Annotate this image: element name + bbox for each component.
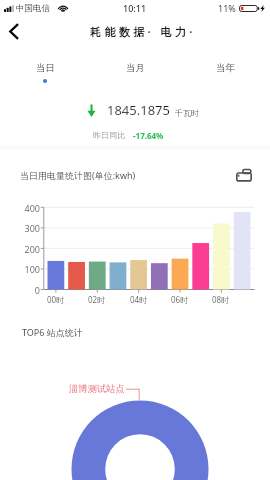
staticText: 08时 [212,294,230,305]
staticText: 当日用电量统计图(单位:kwh) [20,169,136,181]
staticText: 昨日同比 [93,130,125,140]
staticText: 200 [24,243,40,254]
staticText: 0 [34,284,40,295]
button[interactable]: 当月 [90,57,180,87]
staticText: 中国电信 [16,3,50,14]
staticText: 10:11 [123,2,147,14]
staticText: 当日 [36,62,55,74]
button[interactable]: 当日 [0,57,90,87]
staticText: 400 [24,202,40,213]
staticText: 当月 [126,62,145,74]
staticText: TOP6 站点统计 [22,326,83,338]
staticText: 千瓦时 [175,108,199,118]
staticText: 00时 [47,294,65,305]
button[interactable]: 当年 [180,57,270,87]
button[interactable]: Export [232,164,255,187]
staticText: 300 [24,222,40,233]
staticText: 耗能数据· 电力· [90,24,196,39]
staticText: 04时 [130,294,148,305]
staticText: -17.64% [133,130,164,141]
staticText: 06时 [171,294,189,305]
staticText: 100 [24,263,40,274]
staticText: 11% [218,2,236,14]
staticText: 1845.1875 [107,101,170,119]
staticText: 当年 [216,62,235,74]
staticText: 淄博测试站点 [69,383,125,395]
staticText: 02时 [88,294,106,305]
button[interactable]: Back [0,18,27,44]
